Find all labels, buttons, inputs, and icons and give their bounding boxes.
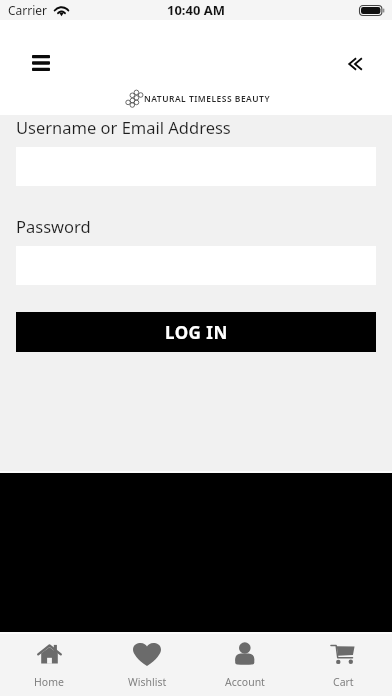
staticText: Username or Email Address xyxy=(16,116,231,138)
staticText: Password xyxy=(16,215,91,237)
staticText: Cart xyxy=(333,675,354,689)
staticText: Account xyxy=(225,675,265,689)
staticText: Carrier xyxy=(8,2,48,18)
button[interactable]: Wishlist xyxy=(98,632,196,696)
staticText: 10:40 AM xyxy=(167,1,226,19)
staticText: Wishlist xyxy=(128,675,167,689)
button[interactable]: Account xyxy=(196,632,294,696)
button[interactable]: Back xyxy=(336,45,373,82)
button[interactable]: Open menu xyxy=(22,44,59,81)
button[interactable]: Cart xyxy=(294,632,392,696)
staticText: NATURAL TIMELESS BEAUTY xyxy=(144,93,271,105)
button[interactable]: LOG IN xyxy=(16,312,376,352)
staticText: Home xyxy=(34,675,64,689)
staticText: LOG IN xyxy=(165,321,228,344)
button[interactable]: Home xyxy=(0,632,98,696)
